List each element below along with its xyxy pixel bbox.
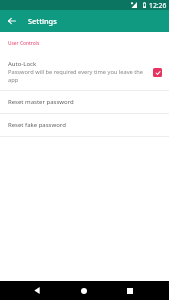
button[interactable]: Auto-Lock toggle	[153, 68, 162, 77]
staticText: Settings	[28, 16, 57, 26]
staticText: Reset master password	[8, 98, 74, 106]
button[interactable]: Auto-Lock	[0, 47, 169, 90]
staticText: Reset fake password	[8, 121, 66, 129]
button[interactable]: Reset master password	[0, 91, 169, 113]
staticText: 12:26	[149, 1, 167, 10]
button[interactable]: Home	[73, 281, 95, 300]
button[interactable]: Back	[0, 10, 24, 32]
staticText: Password will be required every time you…	[8, 68, 145, 84]
staticText: User Controls	[8, 40, 40, 47]
staticText: Auto-Lock	[8, 60, 37, 68]
button[interactable]: Recent apps	[119, 281, 141, 300]
button[interactable]: Reset fake password	[0, 114, 169, 136]
button[interactable]: Back	[26, 281, 48, 300]
